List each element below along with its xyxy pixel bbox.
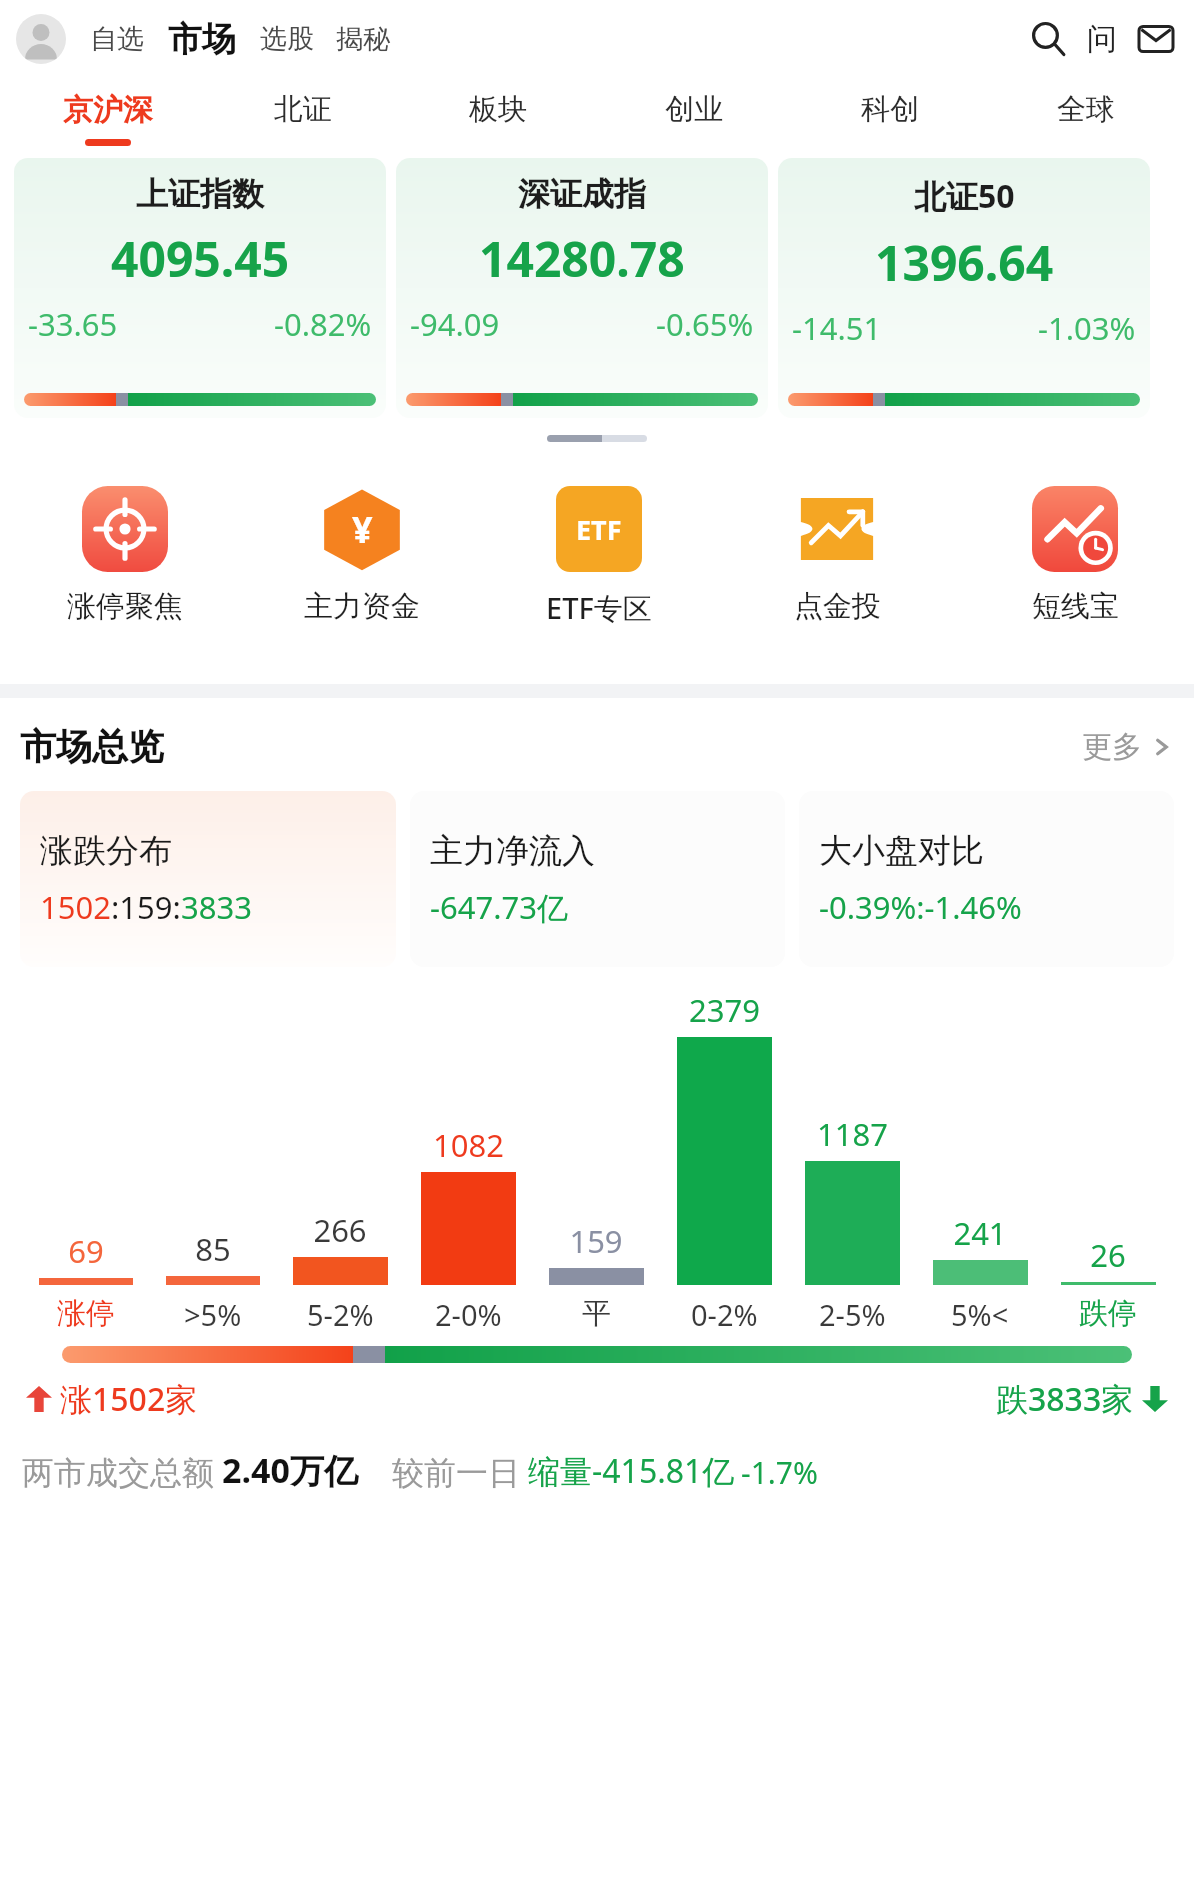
staticText: 揭秘	[336, 22, 390, 56]
button[interactable]: 问	[1078, 15, 1126, 63]
button[interactable]: 上证指数	[14, 158, 386, 418]
staticText: 京沪深	[63, 91, 153, 129]
staticText: -0.82%	[274, 303, 372, 345]
staticText: 更多	[1082, 728, 1142, 766]
staticText: 缩量-415.81亿	[528, 1449, 735, 1493]
staticText: 涨1502家	[60, 1377, 198, 1421]
staticText: 北证50	[914, 174, 1015, 218]
staticText: 市场	[168, 18, 236, 61]
staticText: >5%	[184, 1295, 242, 1334]
button[interactable]: 科创	[792, 78, 988, 158]
button[interactable]: 短线宝	[956, 464, 1194, 674]
staticText: 较前一日	[392, 1453, 520, 1493]
staticText: 全球	[1057, 91, 1115, 128]
button[interactable]: 市场总览	[20, 724, 1174, 769]
button[interactable]: 揭秘	[332, 22, 394, 56]
button[interactable]: ETF	[480, 464, 718, 674]
staticText: 涨停	[57, 1295, 115, 1332]
button[interactable]: 创业	[596, 78, 792, 158]
button[interactable]: Search	[1024, 15, 1072, 63]
staticText: 159	[569, 1220, 623, 1262]
staticText: 69	[68, 1230, 104, 1272]
button[interactable]: 涨停聚焦	[6, 464, 243, 674]
staticText: ¥	[352, 505, 373, 554]
staticText: 点金投	[794, 588, 881, 625]
staticText: 266	[313, 1209, 367, 1251]
staticText: ETF专区	[546, 588, 652, 628]
staticText: -94.09	[410, 303, 500, 345]
staticText: 涨停聚焦	[67, 588, 183, 625]
staticText: 85	[195, 1228, 231, 1270]
button[interactable]: 京沪深	[10, 78, 205, 158]
staticText: 1187	[817, 1113, 888, 1155]
button[interactable]: 深证成指	[396, 158, 768, 418]
staticText: 上证指数	[136, 174, 264, 214]
button[interactable]: Profile	[16, 14, 66, 64]
button[interactable]: 涨跌分布	[20, 791, 396, 967]
staticText: 5%<	[951, 1295, 1009, 1334]
button[interactable]: 北证	[205, 78, 400, 158]
staticText: 主力净流入	[430, 830, 595, 872]
staticText: 平	[582, 1295, 611, 1332]
staticText: 深证成指	[518, 174, 646, 214]
staticText: 北证	[274, 91, 332, 128]
staticText: 0-2%	[691, 1295, 758, 1334]
staticText: 选股	[260, 22, 314, 56]
staticText: 241	[953, 1212, 1007, 1254]
staticText: 问	[1087, 20, 1117, 58]
button[interactable]: 北证50	[778, 158, 1150, 418]
staticText: 2379	[689, 989, 760, 1031]
staticText: -1.03%	[1038, 307, 1136, 349]
staticText: 3833	[181, 886, 252, 928]
staticText: 涨跌分布	[40, 830, 172, 872]
staticText: 1396.64	[875, 230, 1054, 295]
staticText: 2-0%	[435, 1295, 502, 1334]
staticText: 4095.45	[111, 226, 290, 291]
button[interactable]: 全球	[988, 78, 1184, 158]
button[interactable]: 自选	[86, 22, 148, 56]
staticText: -1.7%	[741, 1452, 818, 1493]
staticText: 跌停	[1079, 1295, 1137, 1332]
staticText: -14.51	[792, 307, 882, 349]
staticText: 主力资金	[304, 588, 420, 625]
staticText: 市场总览	[20, 724, 164, 769]
staticText: 5-2%	[307, 1295, 374, 1334]
staticText: -647.73亿	[430, 886, 568, 928]
staticText: 两市成交总额	[22, 1453, 214, 1493]
button[interactable]: 点金投	[718, 464, 956, 674]
button[interactable]: 选股	[256, 22, 318, 56]
staticText: 2-5%	[819, 1295, 886, 1334]
staticText: 1502	[40, 886, 111, 928]
staticText: 14280.78	[479, 226, 685, 291]
staticText: 大小盘对比	[819, 830, 984, 872]
staticText: :159:	[111, 886, 181, 928]
button[interactable]: 市场	[164, 18, 240, 61]
button[interactable]: 大小盘对比	[799, 791, 1174, 967]
staticText: -33.65	[28, 303, 118, 345]
button[interactable]: 主力净流入	[410, 791, 785, 967]
button[interactable]: Messages	[1132, 15, 1180, 63]
staticText: ETF	[576, 511, 622, 548]
staticText: 26	[1090, 1234, 1126, 1276]
staticText: 短线宝	[1032, 588, 1119, 625]
staticText: 科创	[861, 91, 919, 128]
staticText: 1082	[433, 1124, 504, 1166]
button[interactable]: 板块	[400, 78, 596, 158]
staticText: -0.39%:-1.46%	[819, 886, 1022, 928]
staticText: 跌3833家	[996, 1377, 1134, 1421]
staticText: 2.40万亿	[222, 1447, 358, 1493]
button[interactable]: ¥	[243, 464, 480, 674]
staticText: -0.65%	[656, 303, 754, 345]
staticText: 自选	[90, 22, 144, 56]
staticText: 板块	[469, 91, 527, 128]
staticText: 创业	[665, 91, 723, 128]
